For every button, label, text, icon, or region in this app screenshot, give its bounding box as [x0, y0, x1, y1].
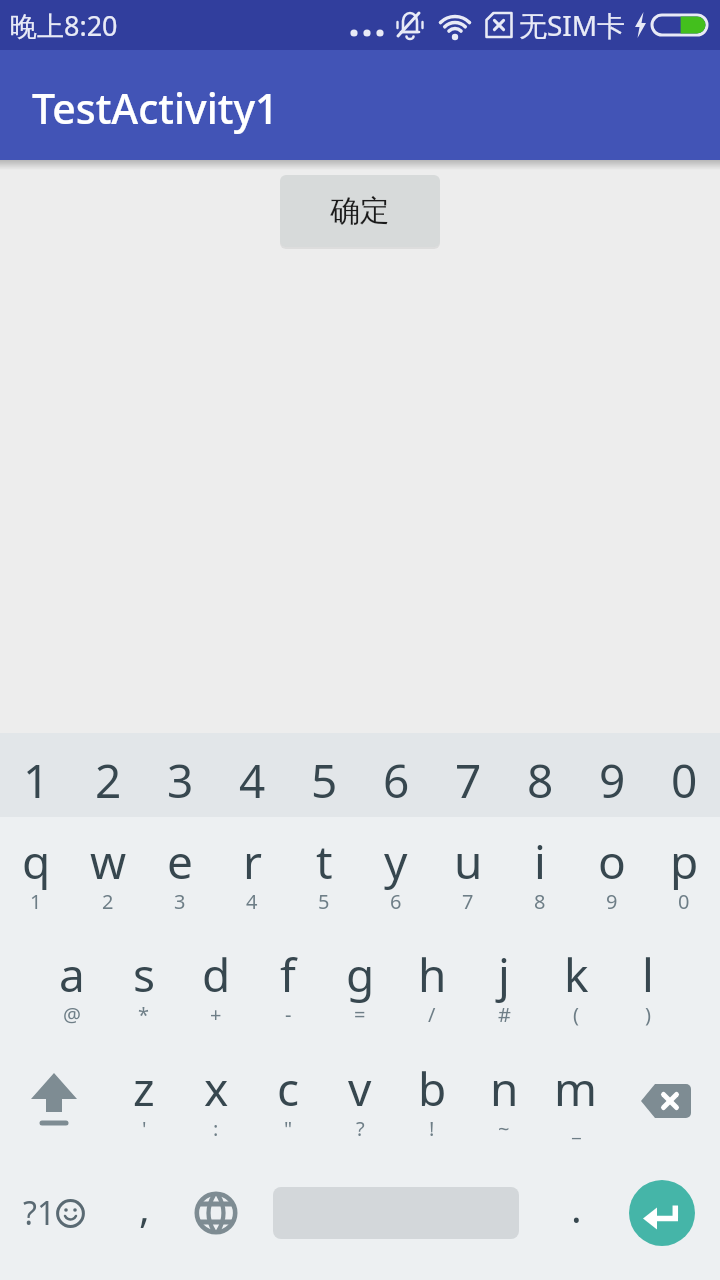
button[interactable]: , — [108, 1158, 180, 1280]
staticText: 晚上8:20 — [10, 7, 118, 44]
staticText: p — [670, 830, 699, 893]
button[interactable]: d — [180, 930, 252, 1044]
button[interactable]: e — [144, 817, 216, 930]
staticText: 1 — [30, 888, 42, 915]
button[interactable]: 2 — [72, 733, 144, 817]
staticText: ?1 — [23, 1191, 56, 1235]
button[interactable]: c — [252, 1044, 324, 1158]
button[interactable]: 8 — [504, 733, 576, 817]
button[interactable]: j — [468, 930, 540, 1044]
staticText: 5 — [318, 888, 330, 915]
button[interactable]: i — [504, 817, 576, 930]
button[interactable]: w — [72, 817, 144, 930]
button[interactable]: 4 — [216, 733, 288, 817]
staticText: _ — [572, 1115, 581, 1142]
button[interactable]: g — [324, 930, 396, 1044]
button[interactable]: b — [396, 1044, 468, 1158]
staticText: r — [243, 830, 262, 893]
staticText: 4 — [246, 888, 258, 915]
staticText: c — [277, 1057, 300, 1120]
button[interactable]: n — [468, 1044, 540, 1158]
staticText: 3 — [167, 749, 194, 812]
staticText: 0 — [678, 888, 690, 915]
staticText: k — [564, 943, 589, 1006]
staticText: 8 — [527, 749, 554, 812]
staticText: / — [428, 1001, 436, 1028]
staticText: ~ — [498, 1115, 510, 1142]
button[interactable] — [0, 1044, 108, 1158]
staticText: x — [204, 1057, 229, 1120]
staticText: , — [139, 1180, 150, 1234]
staticText: 无SIM卡 — [519, 6, 626, 44]
staticText: . — [571, 1180, 582, 1234]
button[interactable]: 5 — [288, 733, 360, 817]
staticText: TestActivity1 — [32, 80, 279, 136]
staticText: * — [138, 1001, 150, 1028]
button[interactable]: l — [612, 930, 684, 1044]
staticText: a — [59, 943, 85, 1006]
button[interactable]: k — [540, 930, 612, 1044]
button[interactable]: ?1 — [0, 1158, 108, 1280]
staticText: - — [285, 1001, 292, 1028]
staticText: : — [213, 1115, 219, 1142]
staticText: 1 — [23, 749, 50, 812]
button[interactable]: 6 — [360, 733, 432, 817]
button[interactable]: . — [540, 1158, 612, 1280]
staticText: ! — [429, 1115, 435, 1142]
button[interactable]: m — [540, 1044, 612, 1158]
staticText: m — [554, 1057, 598, 1120]
button[interactable]: 7 — [432, 733, 504, 817]
button[interactable] — [612, 1158, 720, 1280]
button[interactable] — [252, 1158, 540, 1280]
staticText: s — [133, 943, 156, 1006]
button[interactable]: t — [288, 817, 360, 930]
button[interactable]: o — [576, 817, 648, 930]
button[interactable] — [180, 1158, 252, 1280]
button[interactable]: r — [216, 817, 288, 930]
button[interactable]: s — [108, 930, 180, 1044]
staticText: 8 — [534, 888, 546, 915]
button[interactable]: 0 — [648, 733, 720, 817]
staticText: 2 — [95, 749, 122, 812]
staticText: o — [598, 830, 626, 893]
staticText: e — [167, 830, 193, 893]
staticText: 2 — [102, 888, 114, 915]
button[interactable]: x — [180, 1044, 252, 1158]
button[interactable]: y — [360, 817, 432, 930]
button[interactable]: p — [648, 817, 720, 930]
staticText: ( — [573, 1001, 579, 1028]
button[interactable]: z — [108, 1044, 180, 1158]
button[interactable]: 1 — [0, 733, 72, 817]
staticText: ' — [142, 1115, 147, 1142]
button[interactable]: u — [432, 817, 504, 930]
staticText: w — [90, 830, 127, 893]
staticText: 9 — [606, 888, 618, 915]
staticText: l — [642, 943, 654, 1006]
staticText: h — [418, 943, 447, 1006]
button[interactable]: h — [396, 930, 468, 1044]
staticText: f — [280, 943, 296, 1006]
button[interactable]: 确定 — [280, 175, 440, 247]
button[interactable]: 9 — [576, 733, 648, 817]
button[interactable]: q — [0, 817, 72, 930]
button[interactable] — [612, 1044, 720, 1158]
staticText: 3 — [174, 888, 186, 915]
staticText: i — [534, 830, 546, 893]
staticText: z — [133, 1057, 155, 1120]
staticText: 6 — [383, 749, 410, 812]
staticText: v — [348, 1057, 372, 1120]
staticText: u — [454, 830, 483, 893]
staticText: j — [498, 943, 510, 1006]
button[interactable]: v — [324, 1044, 396, 1158]
staticText: 9 — [599, 749, 626, 812]
staticText: " — [284, 1115, 293, 1142]
staticText: 4 — [239, 749, 266, 812]
staticText: = — [354, 1001, 366, 1028]
button[interactable]: 3 — [144, 733, 216, 817]
button[interactable]: f — [252, 930, 324, 1044]
staticText: n — [490, 1057, 519, 1120]
button[interactable]: a — [36, 930, 108, 1044]
staticText: 0 — [671, 749, 698, 812]
staticText: ? — [356, 1115, 365, 1142]
staticText: g — [346, 943, 375, 1006]
